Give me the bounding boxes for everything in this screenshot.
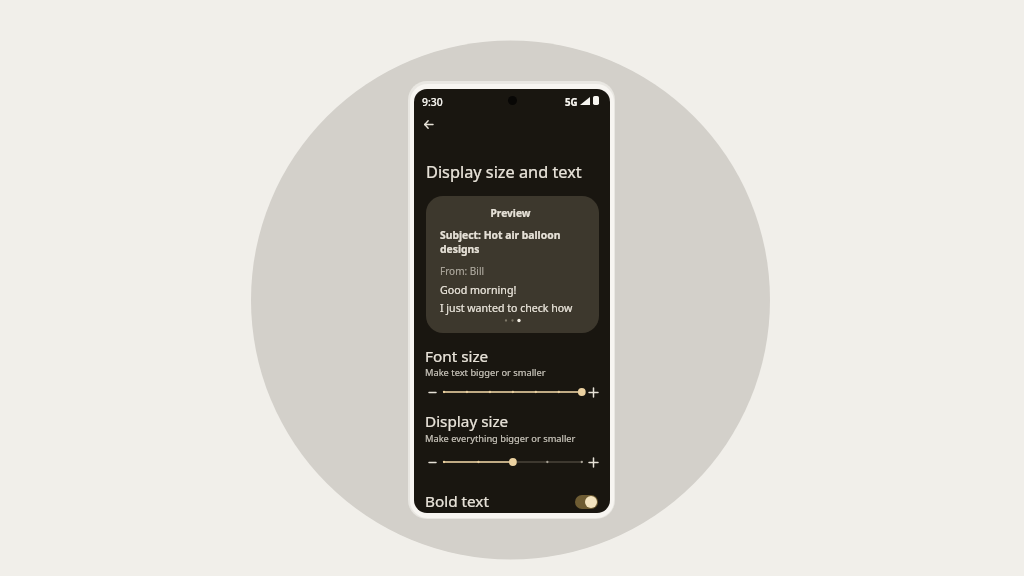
staticText: Bold text bbox=[425, 491, 489, 512]
staticText: Make text bigger or smaller bbox=[425, 366, 546, 379]
staticText: 5G bbox=[565, 96, 578, 109]
button[interactable]: Increase bbox=[585, 453, 602, 471]
staticText: 9:30 bbox=[422, 95, 443, 109]
staticText: Display size and text bbox=[426, 161, 582, 183]
button[interactable]: Back bbox=[417, 113, 439, 135]
button[interactable]: Bold text bbox=[414, 487, 610, 512]
staticText: Preview bbox=[426, 206, 597, 220]
staticText: I just wanted to check how bbox=[440, 301, 573, 315]
staticText: From: Bill bbox=[440, 264, 485, 278]
staticText: Good morning! bbox=[440, 283, 517, 298]
button[interactable]: Preview bbox=[426, 196, 599, 333]
staticText: Subject: Hot air balloon designs bbox=[440, 228, 561, 256]
button[interactable] bbox=[439, 383, 585, 401]
button[interactable]: Increase bbox=[585, 383, 602, 401]
button[interactable]: Bold text toggle, on bbox=[575, 495, 598, 509]
button[interactable] bbox=[439, 453, 585, 471]
staticText: Font size bbox=[425, 346, 489, 367]
button[interactable]: Decrease bbox=[424, 383, 440, 401]
button[interactable]: Decrease bbox=[424, 453, 440, 471]
staticText: Display size bbox=[425, 411, 509, 432]
staticText: Make everything bigger or smaller bbox=[425, 432, 576, 445]
